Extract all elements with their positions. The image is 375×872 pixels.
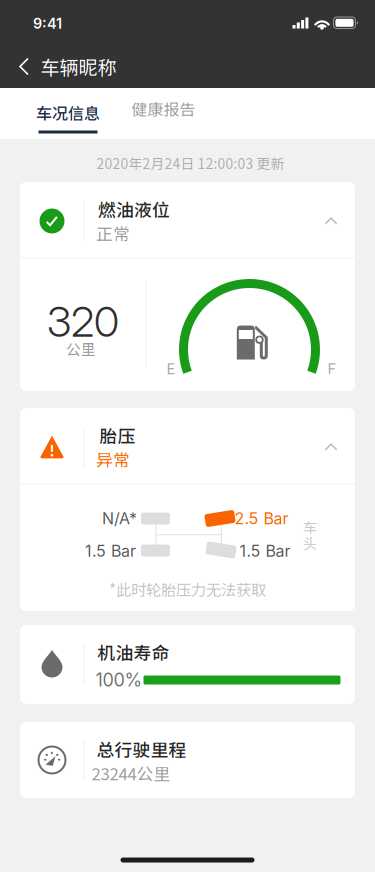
- staticText: 总行驶里程: [96, 736, 186, 762]
- button[interactable]: 车况信息: [20, 92, 116, 143]
- staticText: 2020年2月24日 12:00:03 更新: [96, 153, 284, 173]
- staticText: 车况信息: [36, 101, 100, 124]
- staticText: 健康报告: [131, 97, 195, 120]
- staticText: 1.5 Bar: [239, 541, 290, 561]
- staticText: 100%: [95, 669, 142, 691]
- staticText: 头: [303, 533, 317, 553]
- staticText: 正常: [96, 221, 130, 245]
- staticText: 9:41: [33, 15, 62, 32]
- button[interactable]: Back: [2, 44, 46, 88]
- button[interactable]: 收起燃油液位: [309, 199, 353, 243]
- staticText: 1.5 Bar: [85, 541, 136, 561]
- staticText: 320: [47, 296, 119, 347]
- staticText: F: [327, 360, 336, 378]
- staticText: 23244公里: [91, 761, 170, 785]
- staticText: N/A*: [102, 509, 137, 528]
- button[interactable]: 收起胎压: [309, 425, 353, 469]
- staticText: 燃油液位: [98, 196, 170, 222]
- staticText: 2.5 Bar: [234, 509, 288, 528]
- staticText: 车辆昵称: [40, 53, 116, 80]
- staticText: 机油寿命: [97, 639, 169, 665]
- staticText: E: [166, 360, 175, 378]
- staticText: 异常: [96, 447, 130, 471]
- button[interactable]: 健康报告: [115, 89, 211, 140]
- staticText: 胎压: [99, 422, 135, 448]
- staticText: *此时轮胎压力无法获取: [109, 578, 266, 600]
- staticText: 公里: [66, 338, 96, 359]
- staticText: 车: [303, 517, 317, 537]
